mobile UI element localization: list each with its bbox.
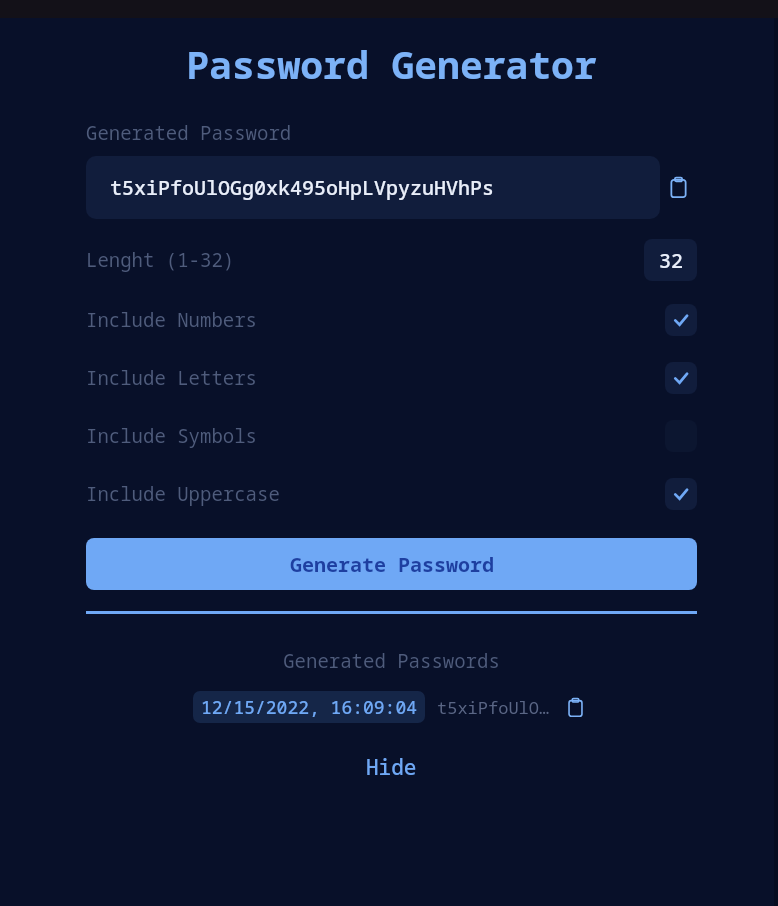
button[interactable]: 32 <box>644 239 697 281</box>
button[interactable]: Include Numbers <box>665 304 697 336</box>
staticText: Generate Password <box>290 551 494 578</box>
staticText: Include Letters <box>86 365 665 391</box>
button[interactable]: Generate Password <box>86 538 697 590</box>
staticText: 12/15/2022, 16:09:04 <box>201 695 417 720</box>
staticText: Include Numbers <box>86 307 665 333</box>
button[interactable]: Include Letters <box>665 362 697 394</box>
button[interactable]: Include Symbols <box>86 407 697 465</box>
staticText: t5xiPfoUlO… <box>437 696 550 719</box>
staticText: 32 <box>659 247 683 274</box>
button[interactable]: Include Letters <box>86 349 697 407</box>
button[interactable]: Hide <box>354 749 429 786</box>
button[interactable]: 12/15/2022, 16:09:04 <box>193 691 425 723</box>
staticText: Generated Passwords <box>86 648 697 674</box>
button[interactable]: Copy password <box>660 156 697 219</box>
staticText: Password Generator <box>86 38 697 90</box>
button[interactable]: Include Uppercase <box>665 478 697 510</box>
button[interactable]: Copy saved password <box>560 692 590 722</box>
button[interactable]: Include Numbers <box>86 291 697 349</box>
staticText: Include Symbols <box>86 423 665 449</box>
button[interactable]: t5xiPfoUlOGg0xk495oHpLVpyzuHVhPs <box>86 156 660 219</box>
button[interactable]: Include Uppercase <box>86 465 697 523</box>
button[interactable]: Lenght (1-32) <box>86 229 697 291</box>
staticText: Hide <box>366 753 417 782</box>
staticText: Generated Password <box>86 120 292 146</box>
staticText: Include Uppercase <box>86 481 665 507</box>
staticText: Lenght (1-32) <box>86 247 644 273</box>
staticText: t5xiPfoUlOGg0xk495oHpLVpyzuHVhPs <box>110 174 494 201</box>
